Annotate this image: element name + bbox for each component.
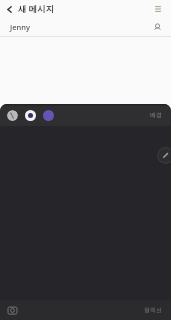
staticText: 배경 [150,111,162,119]
button[interactable]: Back [0,0,18,18]
button[interactable]: Contacts [149,19,166,36]
staticText: Jenny [10,22,30,32]
button[interactable]: Menu [149,0,167,18]
button[interactable]: Camera [4,302,20,318]
button[interactable]: Selected colour [25,110,36,121]
button[interactable]: Purple [43,110,54,121]
button[interactable]: Edit [157,147,171,164]
button[interactable]: No background [7,110,18,121]
staticText: 컬렉션 [144,306,162,314]
staticText: 새 메시지 [18,3,55,15]
